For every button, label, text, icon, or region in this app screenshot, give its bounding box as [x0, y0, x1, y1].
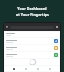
button[interactable]: [5, 32, 59, 37]
button[interactable]: [5, 59, 59, 65]
staticText: at Your Fingertips: [16, 12, 49, 17]
button[interactable]: Navigation item: [23, 66, 29, 71]
button[interactable]: Navigation item: [11, 66, 17, 71]
button[interactable]: Navigation item: [47, 66, 53, 71]
button[interactable]: Profile: [55, 25, 59, 29]
button[interactable]: [5, 38, 59, 44]
button[interactable]: [5, 52, 59, 58]
staticText: Your Dashboard: [17, 6, 47, 11]
button[interactable]: Navigation item: [35, 66, 41, 71]
button[interactable]: Menu: [5, 25, 9, 29]
button[interactable]: [5, 45, 59, 51]
